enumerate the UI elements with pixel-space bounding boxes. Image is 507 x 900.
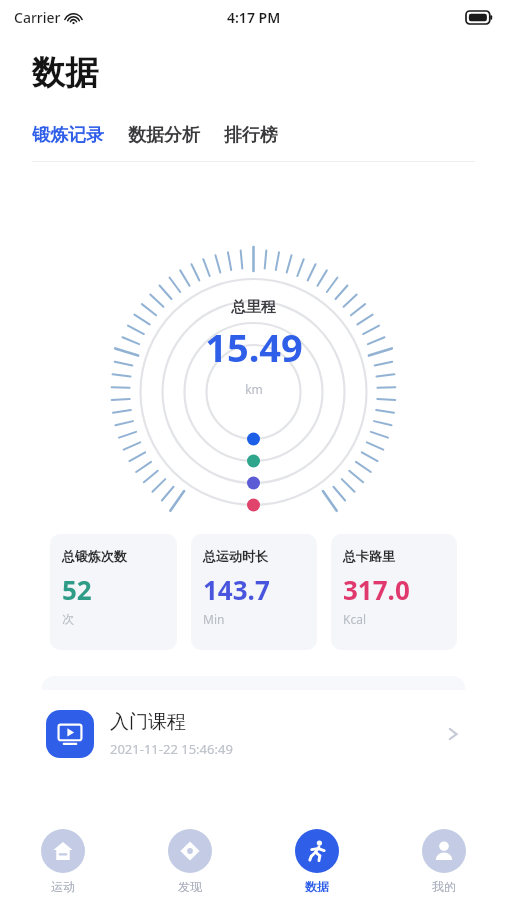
staticText: 我的 <box>432 879 456 894</box>
staticText: 总卡路里 <box>343 548 395 564</box>
staticText: 发现 <box>178 879 202 894</box>
button[interactable]: 我的 <box>380 822 507 900</box>
button[interactable]: 总运动时长 <box>191 534 317 650</box>
button[interactable]: 总卡路里 <box>331 534 457 650</box>
button[interactable]: 排行榜 <box>222 118 280 153</box>
staticText: 317.0 <box>343 572 410 607</box>
staticText: km <box>245 381 263 397</box>
staticText: Carrier <box>14 8 61 27</box>
staticText: 运动 <box>51 879 75 894</box>
staticText: 数据 <box>305 879 329 894</box>
staticText: 143.7 <box>203 572 270 607</box>
staticText: 排行榜 <box>224 124 278 147</box>
button[interactable]: 数据 <box>253 822 380 900</box>
staticText: 2021-11-22 15:46:49 <box>110 740 233 758</box>
button[interactable]: 发现 <box>126 822 253 900</box>
staticText: 入门课程 <box>110 710 186 734</box>
staticText: Min <box>203 611 225 627</box>
staticText: 52 <box>62 572 92 607</box>
staticText: 总锻炼次数 <box>62 548 127 564</box>
button[interactable]: 总锻炼次数 <box>50 534 177 650</box>
staticText: 4:17 PM <box>227 8 281 27</box>
other: Open course detail <box>445 726 461 742</box>
staticText: 数据 <box>32 52 98 94</box>
staticText: 总里程 <box>231 298 276 317</box>
staticText: Kcal <box>343 611 367 627</box>
button[interactable]: 数据分析 <box>126 118 202 153</box>
staticText: 15.49 <box>205 321 303 373</box>
button[interactable]: 运动 <box>0 822 126 900</box>
staticText: 总运动时长 <box>203 548 268 564</box>
staticText: 锻炼记录 <box>32 124 104 147</box>
staticText: 次 <box>62 611 74 626</box>
button[interactable]: 入门课程 <box>28 690 479 778</box>
staticText: 数据分析 <box>128 124 200 147</box>
button[interactable]: 锻炼记录 <box>30 118 106 153</box>
